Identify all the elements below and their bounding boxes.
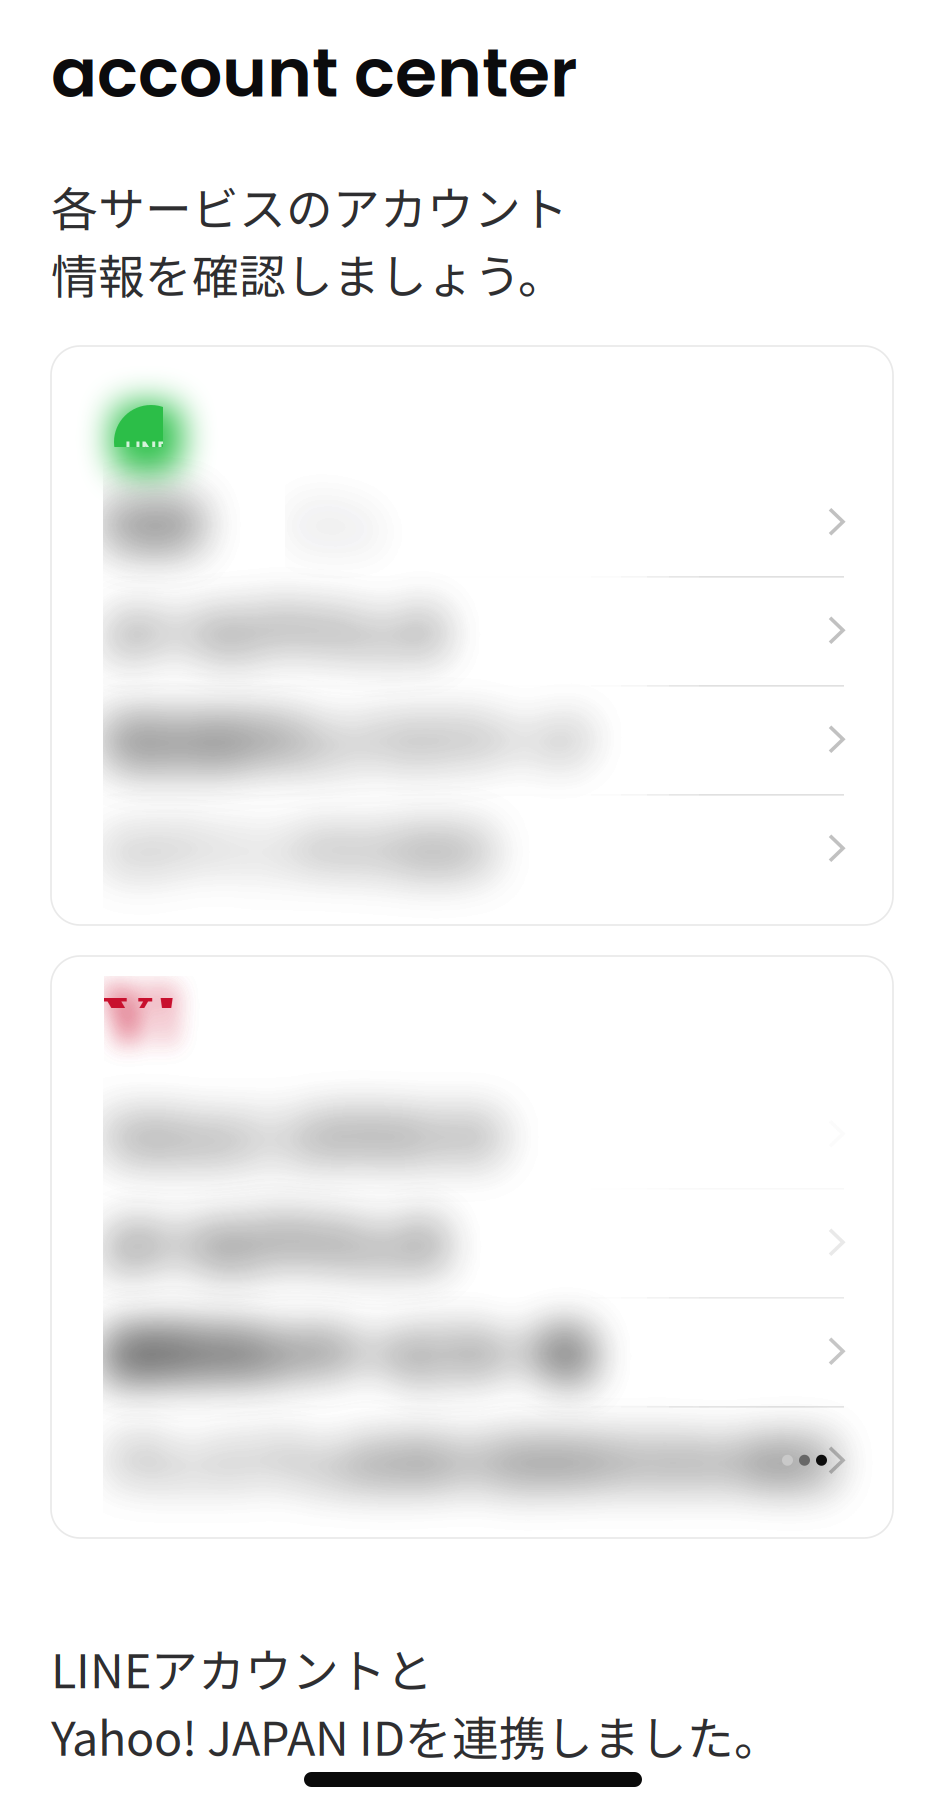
button[interactable] [51, 1188, 893, 1296]
staticText: Y! [104, 716, 181, 794]
staticText: メールアドレス [103, 294, 446, 366]
staticText: LINEアカウントと Yahoo! JAPAN IDを連携しました。 [51, 1634, 781, 1769]
staticText: 電話番号とパスワード [103, 403, 593, 475]
staticText: 電話番号とパスワード [103, 403, 593, 475]
staticText: 各サービスのアカウント 情報を確認しましょう。 [51, 172, 568, 307]
button[interactable] [51, 1406, 893, 1514]
staticText: ログイン中の端末 [103, 512, 495, 584]
staticText: 名前 [103, 186, 201, 257]
staticText: ログイン中の端末 [103, 512, 495, 584]
staticText: メールアドレス [103, 906, 446, 978]
button[interactable] [51, 685, 893, 793]
staticText: メールアドレス [103, 294, 446, 366]
staticText: Y! [104, 716, 181, 794]
button[interactable] [51, 1297, 893, 1405]
staticText: さん [285, 186, 383, 257]
staticText: Yahoo! JAPAN ID [103, 798, 500, 869]
button[interactable] [51, 794, 893, 902]
staticText: LINE [125, 434, 168, 464]
staticText: 名前 [103, 186, 201, 257]
button[interactable] [51, 576, 893, 684]
staticText: Yahoo! JAPAN ID [103, 798, 500, 869]
staticText: 連携済みサービス一覧 [103, 1015, 593, 1087]
staticText: プレミアム会員の登録状況を確認 [103, 1124, 835, 1196]
staticText: Y! [104, 984, 181, 1062]
button[interactable] [51, 1079, 893, 1188]
staticText: account center [51, 25, 577, 120]
staticText: プレミアム会員の登録状況を確認 [103, 1124, 835, 1196]
button[interactable] [51, 467, 893, 576]
staticText: 連携済みサービス一覧 [103, 1015, 593, 1087]
staticText: さん [285, 186, 383, 257]
staticText: メールアドレス [103, 906, 446, 978]
